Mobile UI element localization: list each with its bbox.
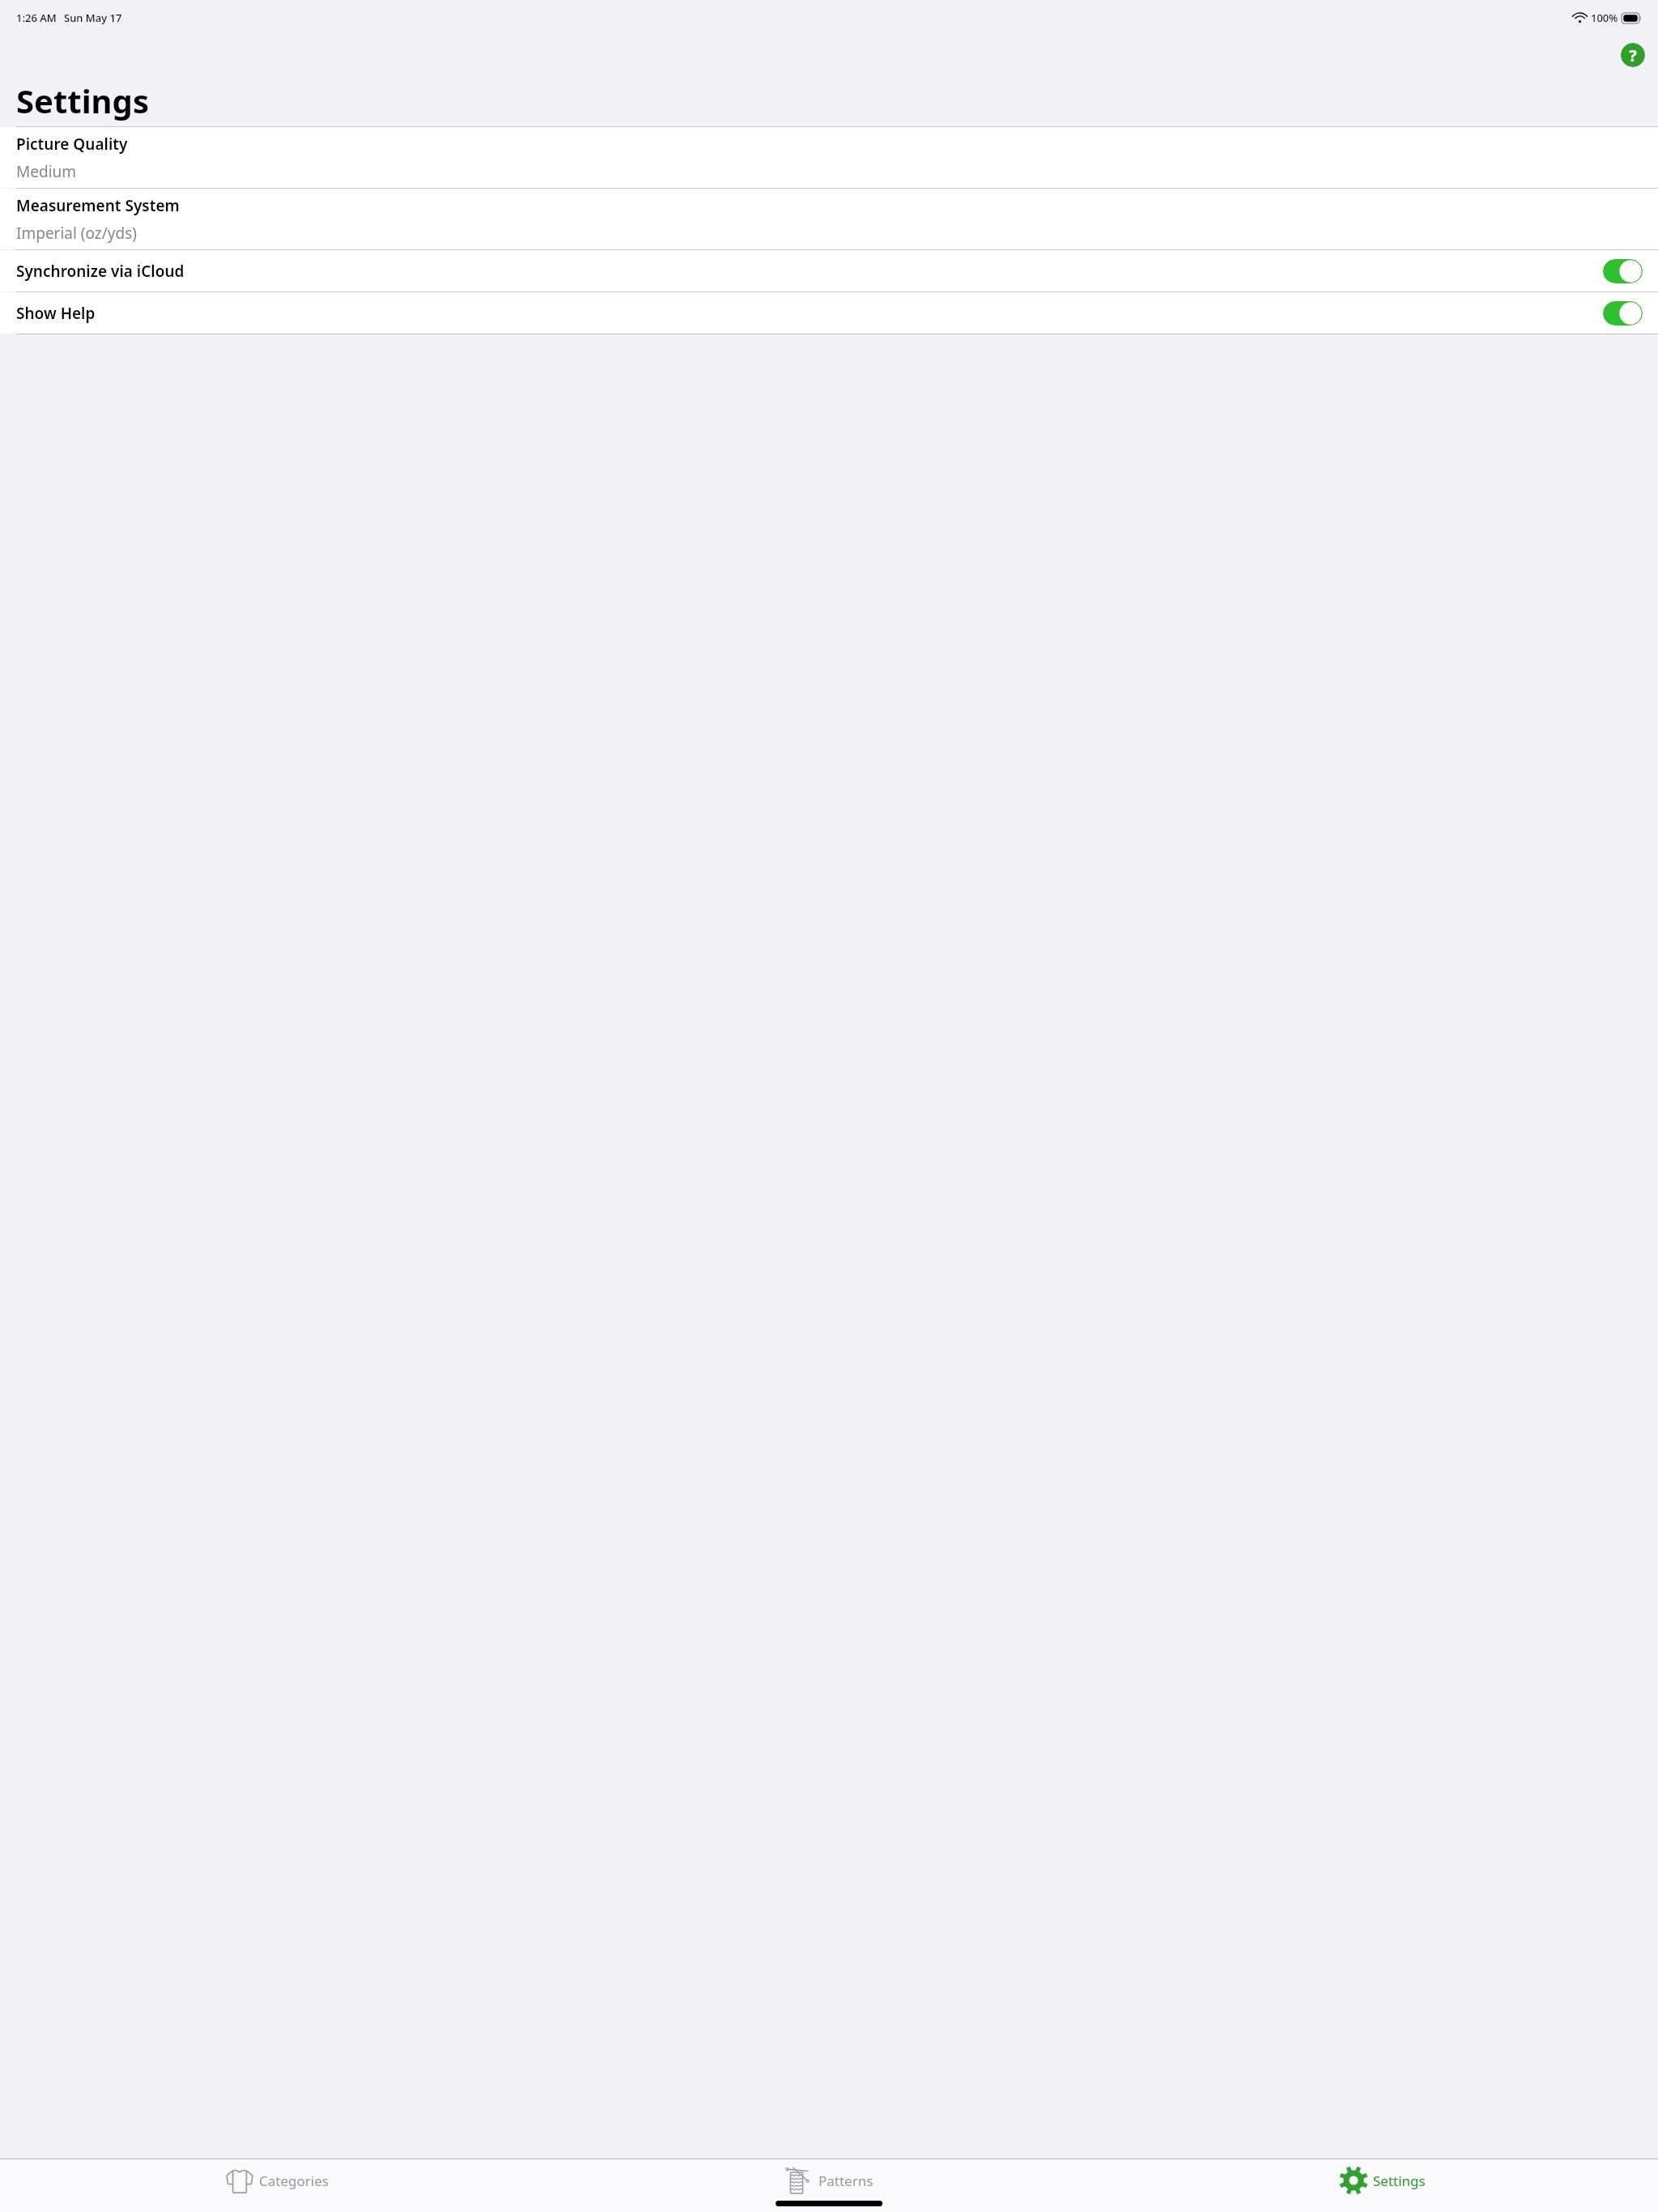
button[interactable]: Synchronize via iCloud [0,250,1658,291]
staticText: Sun May 17 [64,11,122,25]
staticText: Picture Quality [16,134,128,155]
button[interactable]: Toggle on [1603,301,1643,325]
staticText: Show Help [16,303,1603,324]
staticText: Settings [1373,2172,1426,2190]
staticText: Measurement System [16,195,180,216]
button[interactable]: Show Help [0,292,1658,334]
button[interactable]: Settings [1105,2159,1658,2201]
button[interactable]: Measurement System [0,189,1658,249]
button[interactable]: Picture Quality [0,127,1658,188]
button[interactable]: Categories [0,2159,552,2201]
button[interactable]: Toggle on [1603,259,1643,283]
button[interactable]: Help [1621,43,1645,67]
staticText: Patterns [818,2172,874,2190]
staticText: Imperial (oz/yds) [16,223,138,244]
staticText: 100% [1591,11,1618,25]
staticText: ? [1629,45,1637,66]
staticText: Synchronize via iCloud [16,261,1603,282]
button[interactable]: Patterns [552,2159,1105,2201]
staticText: Settings [16,79,149,122]
staticText: Categories [259,2172,329,2190]
staticText: Medium [16,161,77,182]
staticText: 1:26 AM [16,11,57,25]
